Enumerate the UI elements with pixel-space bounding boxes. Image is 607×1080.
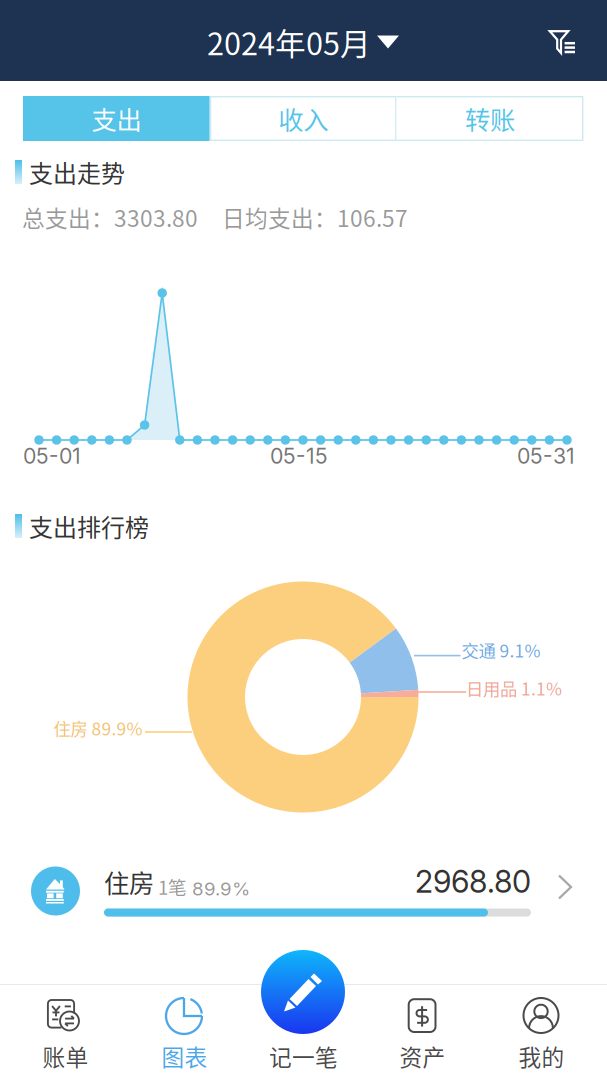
staticText: 资产 — [399, 1040, 445, 1072]
staticText: 日均支出：106.57 — [222, 201, 408, 233]
staticText: 图表 — [161, 1040, 207, 1072]
staticText: 住房 — [104, 863, 154, 900]
staticText: 支出排行榜 — [29, 509, 149, 543]
button[interactable]: 2024年05月 — [197, 12, 409, 72]
staticText: 89.9% — [187, 877, 250, 900]
staticText: 05-31 — [517, 443, 575, 469]
button[interactable]: 资产 — [363, 986, 482, 1076]
button[interactable]: 转账 — [397, 96, 583, 141]
staticText: 1笔 — [154, 873, 187, 900]
staticText: 总支出：3303.80 — [22, 201, 198, 233]
staticText: 转账 — [465, 100, 515, 137]
staticText: 05-01 — [23, 443, 81, 469]
staticText: 住房 89.9% — [53, 715, 142, 741]
button[interactable]: 支出 — [23, 96, 210, 141]
button[interactable]: 我的 — [482, 986, 601, 1076]
staticText: 2024年05月 — [207, 20, 371, 64]
staticText: 记一笔 — [269, 1040, 338, 1072]
button[interactable]: 筛选 — [536, 16, 590, 68]
button[interactable]: 收入 — [210, 96, 397, 141]
button[interactable]: 记一笔 — [261, 950, 345, 1034]
staticText: 交通 9.1% — [461, 637, 540, 663]
button[interactable]: 住房 — [31, 856, 581, 926]
staticText: 收入 — [278, 100, 328, 137]
staticText: 支出 — [91, 100, 141, 137]
staticText: 05-15 — [270, 443, 328, 469]
staticText: 2968.80 — [415, 863, 531, 900]
button[interactable]: 账单 — [6, 986, 125, 1076]
staticText: 支出走势 — [29, 155, 125, 189]
staticText: 日用品 1.1% — [466, 675, 562, 701]
staticText: 账单 — [42, 1040, 88, 1072]
button[interactable]: 图表 — [125, 986, 244, 1076]
staticText: 我的 — [518, 1040, 564, 1072]
